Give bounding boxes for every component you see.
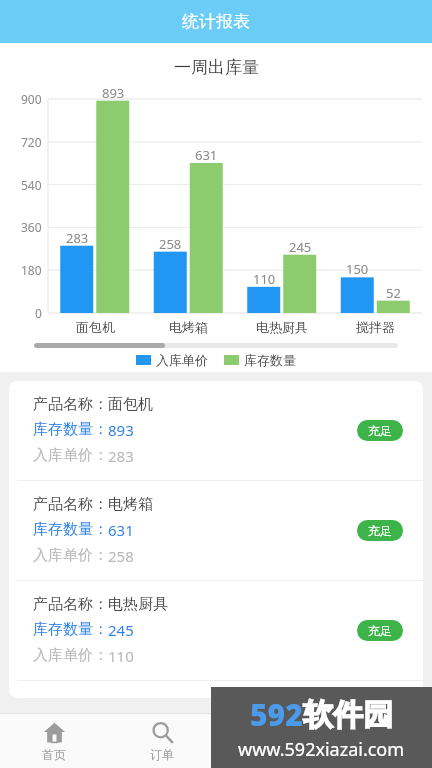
staticText: www.592xiazai.com	[238, 737, 405, 762]
staticText: 统计报表	[182, 11, 250, 32]
staticText: 订单	[150, 747, 174, 762]
staticText: 283	[108, 446, 134, 466]
staticText: 258	[159, 235, 182, 253]
staticText: 720	[21, 134, 42, 150]
staticText: 库存数量：	[33, 420, 108, 439]
staticText: 搅拌器	[356, 319, 395, 335]
staticText: 893	[102, 84, 125, 102]
staticText: 360	[21, 219, 42, 235]
staticText: 52	[386, 284, 401, 302]
staticText: 产品名称：	[33, 395, 108, 414]
staticText: 180	[21, 262, 42, 278]
staticText: 我的	[366, 747, 390, 762]
button[interactable]: 订单	[108, 714, 216, 768]
staticText: 入库单价：	[33, 546, 108, 565]
staticText: 631	[108, 520, 134, 540]
staticText: 库存	[258, 747, 282, 762]
staticText: 入库单价：	[33, 446, 108, 465]
staticText: 充足	[368, 623, 392, 638]
staticText: 150	[346, 260, 369, 278]
button[interactable]	[9, 680, 423, 698]
other: 我的	[367, 721, 390, 744]
button[interactable]: 产品名称：	[9, 581, 423, 680]
staticText: 电烤箱	[169, 319, 208, 335]
staticText: 110	[108, 646, 134, 666]
other: 订单	[151, 721, 174, 744]
staticText: 258	[108, 546, 134, 566]
staticText: 电烤箱	[108, 495, 153, 514]
staticText: 库存数量：	[33, 620, 108, 639]
button[interactable]: 充足	[357, 520, 403, 541]
button[interactable]: 充足	[357, 420, 403, 441]
staticText: 软件园	[303, 696, 393, 734]
staticText: 面包机	[108, 395, 153, 414]
staticText: 充足	[368, 423, 392, 438]
staticText: 入库单价	[156, 352, 208, 368]
button[interactable]: 首页	[0, 714, 108, 768]
other: 首页	[43, 721, 66, 744]
staticText: 产品名称：	[33, 595, 108, 614]
button[interactable]: 我的	[324, 714, 432, 768]
staticText: 库存数量	[244, 352, 296, 368]
staticText: 245	[108, 620, 134, 640]
staticText: 入库单价：	[33, 646, 108, 665]
staticText: 首页	[42, 747, 66, 762]
staticText: 893	[108, 420, 134, 440]
staticText: 540	[21, 177, 42, 193]
button[interactable]: 产品名称：	[9, 481, 423, 580]
button[interactable]: 产品名称：	[9, 381, 423, 480]
staticText: 900	[21, 91, 42, 107]
staticText: 110	[253, 270, 276, 288]
staticText: 592	[250, 694, 303, 735]
staticText: 面包机	[76, 319, 115, 335]
button[interactable]: 充足	[357, 620, 403, 641]
staticText: 库存数量：	[33, 520, 108, 539]
staticText: 245	[289, 238, 312, 256]
staticText: 充足	[368, 523, 392, 538]
staticText: 电热厨具	[108, 595, 168, 614]
staticText: 一周出库量	[174, 57, 259, 78]
staticText: 283	[66, 229, 89, 247]
staticText: 电热厨具	[256, 319, 308, 335]
staticText: 0	[35, 305, 42, 321]
staticText: 产品名称：	[33, 495, 108, 514]
staticText: 631	[195, 146, 218, 164]
other: 库存	[259, 721, 282, 744]
button[interactable]: 库存	[216, 714, 324, 768]
